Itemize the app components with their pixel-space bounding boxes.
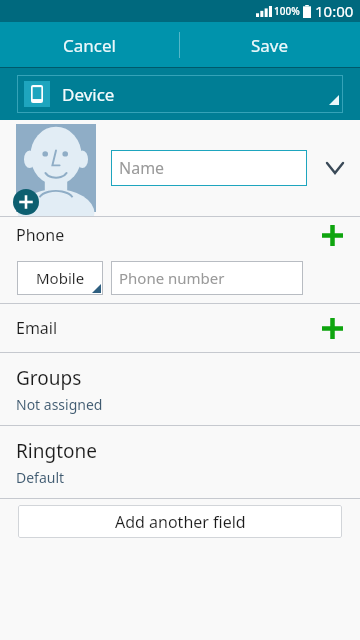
staticText: Add another field	[115, 511, 246, 533]
staticText: Device	[62, 83, 115, 106]
staticText: 10:00	[315, 1, 354, 21]
button[interactable]: Add photo	[16, 124, 96, 212]
staticText: Email	[16, 317, 58, 339]
button[interactable]: Add phone number	[313, 217, 351, 253]
button[interactable]: Expand name fields	[318, 151, 352, 185]
button[interactable]: Device	[17, 75, 343, 113]
staticText: Phone number	[119, 268, 225, 288]
button[interactable]: Save	[180, 22, 360, 68]
staticText: 100%	[274, 4, 300, 18]
button[interactable]: Ringtone	[0, 426, 360, 498]
staticText: Default	[16, 468, 65, 487]
button[interactable]: Add Email	[313, 309, 351, 347]
staticText: Ringtone	[16, 438, 97, 464]
button[interactable]: Name	[111, 150, 307, 186]
staticText: Not assigned	[16, 395, 103, 414]
button[interactable]: Cancel	[0, 22, 179, 68]
staticText: Save	[251, 34, 289, 57]
button[interactable]: Add another field	[18, 505, 342, 538]
staticText: Groups	[16, 365, 82, 391]
button[interactable]: Groups	[0, 353, 360, 425]
button[interactable]: Phone number	[111, 261, 303, 295]
staticText: Mobile	[36, 268, 85, 288]
staticText: Name	[119, 157, 165, 179]
staticText: Phone	[16, 224, 65, 246]
staticText: Cancel	[63, 34, 116, 57]
button[interactable]: Mobile	[17, 261, 103, 295]
